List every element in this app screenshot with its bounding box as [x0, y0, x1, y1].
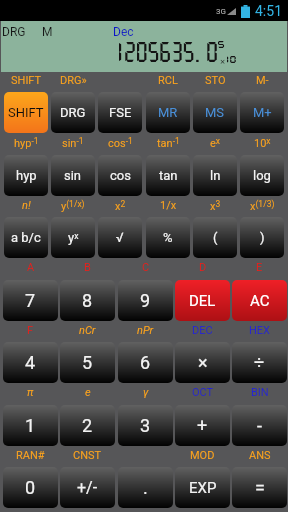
- button[interactable]: MR: [146, 92, 190, 133]
- button[interactable]: yx: [51, 217, 95, 258]
- button[interactable]: .: [118, 467, 173, 508]
- staticText: x2: [115, 199, 126, 212]
- button[interactable]: sin: [51, 155, 95, 196]
- button[interactable]: EXP: [175, 467, 230, 508]
- staticText: hyp-1: [14, 136, 39, 149]
- staticText: 1/x: [160, 199, 177, 212]
- staticText: DRG: [2, 25, 26, 39]
- staticText: a b/c: [11, 230, 41, 245]
- button[interactable]: hyp: [4, 155, 48, 196]
- staticText: ANS: [249, 449, 271, 462]
- staticText: nCr: [79, 324, 96, 337]
- staticText: B: [84, 261, 91, 274]
- button[interactable]: tan: [146, 155, 190, 196]
- button[interactable]: =: [232, 467, 287, 508]
- button[interactable]: AC: [232, 280, 287, 321]
- staticText: %: [163, 230, 173, 245]
- button[interactable]: 0: [3, 467, 58, 508]
- staticText: DEC: [192, 324, 213, 337]
- staticText: 2: [82, 415, 93, 436]
- staticText: ÷: [254, 352, 265, 373]
- staticText: SHIFT: [8, 105, 44, 120]
- button[interactable]: 3: [118, 405, 173, 446]
- staticText: 3G: [216, 7, 226, 16]
- staticText: sin-1: [62, 136, 84, 149]
- staticText: A: [27, 261, 35, 274]
- staticText: 1: [25, 415, 36, 436]
- staticText: OCT: [192, 386, 214, 399]
- button[interactable]: -: [232, 405, 287, 446]
- staticText: MS: [205, 105, 225, 120]
- button[interactable]: 9: [118, 280, 173, 321]
- button[interactable]: ×: [175, 342, 230, 383]
- staticText: RAN#: [16, 449, 45, 462]
- staticText: AC: [250, 292, 270, 310]
- button[interactable]: cos: [98, 155, 142, 196]
- button[interactable]: SHIFT: [4, 92, 48, 133]
- button[interactable]: +: [175, 405, 230, 446]
- button[interactable]: M+: [240, 92, 284, 133]
- staticText: BIN: [251, 386, 269, 399]
- button[interactable]: ): [240, 217, 284, 258]
- staticText: DRG»: [60, 74, 87, 87]
- button[interactable]: ln: [193, 155, 237, 196]
- staticText: y(1/x): [61, 199, 85, 212]
- staticText: .: [143, 477, 148, 498]
- button[interactable]: %: [146, 217, 190, 258]
- button[interactable]: 6: [118, 342, 173, 383]
- staticText: D: [199, 261, 207, 274]
- staticText: RCL: [158, 74, 178, 87]
- staticText: ln: [210, 168, 221, 183]
- staticText: STO: [205, 74, 226, 87]
- staticText: CNST: [73, 449, 102, 462]
- staticText: ×: [198, 352, 208, 373]
- staticText: 9: [140, 290, 151, 311]
- staticText: M-: [256, 74, 269, 87]
- button[interactable]: 4: [3, 342, 58, 383]
- staticText: 7: [25, 290, 36, 311]
- staticText: -: [257, 415, 262, 436]
- button[interactable]: MS: [193, 92, 237, 133]
- button[interactable]: 1: [3, 405, 58, 446]
- button[interactable]: 8: [60, 280, 115, 321]
- button[interactable]: ÷: [232, 342, 287, 383]
- staticText: 10x: [254, 136, 271, 149]
- staticText: 4:51: [255, 3, 282, 19]
- staticText: SHIFT: [11, 74, 42, 87]
- staticText: π: [27, 386, 34, 399]
- staticText: x(1/3): [250, 199, 275, 212]
- staticText: 8: [82, 290, 93, 311]
- button[interactable]: DEL: [175, 280, 230, 321]
- staticText: +/-: [77, 478, 98, 497]
- button[interactable]: FSE: [98, 92, 142, 133]
- staticText: hyp: [16, 168, 37, 183]
- staticText: tan: [159, 168, 178, 183]
- button[interactable]: (: [193, 217, 237, 258]
- staticText: =: [255, 477, 265, 498]
- button[interactable]: 7: [3, 280, 58, 321]
- staticText: EXP: [189, 479, 217, 497]
- staticText: MOD: [190, 449, 215, 462]
- staticText: log: [253, 168, 271, 183]
- staticText: sin: [64, 168, 82, 183]
- button[interactable]: DRG: [51, 92, 95, 133]
- button[interactable]: a b/c: [4, 217, 48, 258]
- staticText: M+: [253, 105, 272, 120]
- staticText: cos-1: [108, 136, 133, 149]
- button[interactable]: log: [240, 155, 284, 196]
- staticText: x3: [210, 199, 221, 212]
- button[interactable]: 5: [60, 342, 115, 383]
- staticText: FSE: [109, 105, 132, 120]
- staticText: ex: [210, 136, 221, 149]
- staticText: +: [197, 415, 208, 436]
- staticText: F: [27, 324, 34, 337]
- staticText: 3: [140, 415, 151, 436]
- staticText: e: [85, 386, 91, 399]
- staticText: E: [256, 261, 263, 274]
- staticText: Dec: [113, 25, 134, 39]
- staticText: √: [116, 230, 124, 245]
- button[interactable]: 2: [60, 405, 115, 446]
- staticText: HEX: [249, 324, 270, 337]
- button[interactable]: +/-: [60, 467, 115, 508]
- button[interactable]: √: [98, 217, 142, 258]
